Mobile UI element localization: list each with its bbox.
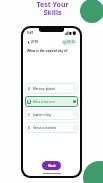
staticText: D [28,126,30,130]
staticText: B [28,100,30,104]
staticText: Test Your Skills [36,0,69,17]
staticText: Jupiter is big [33,113,51,117]
staticText: C [28,113,30,117]
button[interactable]: 03:12 [62,39,76,45]
button[interactable]: C [25,109,78,120]
staticText: Mars is the one [33,100,55,104]
button[interactable]: Next [42,161,61,170]
button[interactable]: A [25,83,78,94]
button[interactable]: D [25,122,78,133]
staticText: What is the capital city of Australia? [27,49,76,53]
staticText: 9:41 [27,31,34,35]
staticText: Venus is hottest [33,126,56,130]
staticText: Mercury planet [33,87,55,91]
button[interactable]: Back [27,40,38,44]
staticText: Next [48,164,56,168]
button[interactable]: B [25,96,78,107]
staticText: A [28,87,30,91]
staticText: 03:12 [67,40,75,44]
staticText: 2/10 [31,40,38,44]
